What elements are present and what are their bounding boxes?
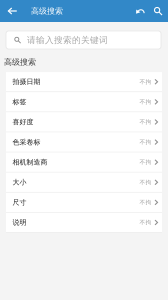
button[interactable]: 喜好度: [6, 112, 162, 132]
staticText: 不拘: [139, 138, 151, 146]
button[interactable]: Reset filters: [131, 0, 149, 22]
staticText: 色采卷标: [12, 138, 40, 146]
button[interactable]: 标签: [6, 92, 162, 112]
button[interactable]: 相机制造商: [6, 152, 162, 173]
button[interactable]: 色采卷标: [6, 132, 162, 152]
button[interactable]: 拍摄日期: [6, 72, 162, 92]
staticText: 标签: [12, 97, 26, 106]
staticText: 请输入搜索的关键词: [27, 34, 108, 45]
staticText: 不拘: [139, 78, 151, 85]
staticText: 不拘: [139, 159, 151, 166]
button[interactable]: 大小: [6, 173, 162, 193]
staticText: 不拘: [139, 219, 151, 226]
staticText: 高级搜索: [31, 6, 63, 16]
staticText: 相机制造商: [12, 158, 47, 166]
staticText: 拍摄日期: [12, 77, 40, 86]
staticText: 说明: [12, 218, 26, 227]
button[interactable]: 说明: [6, 213, 162, 233]
staticText: 不拘: [139, 118, 151, 125]
staticText: 高级搜索: [4, 57, 36, 67]
staticText: 不拘: [139, 179, 151, 186]
staticText: 不拘: [139, 199, 151, 206]
staticText: 大小: [12, 178, 26, 187]
staticText: 喜好度: [12, 118, 33, 126]
button[interactable]: Search: [149, 0, 167, 22]
button[interactable]: 尺寸: [6, 193, 162, 213]
button[interactable]: Back: [2, 0, 23, 22]
button[interactable]: 请输入搜索的关键词: [0, 22, 168, 57]
staticText: 尺寸: [12, 198, 26, 207]
staticText: 不拘: [139, 98, 151, 105]
